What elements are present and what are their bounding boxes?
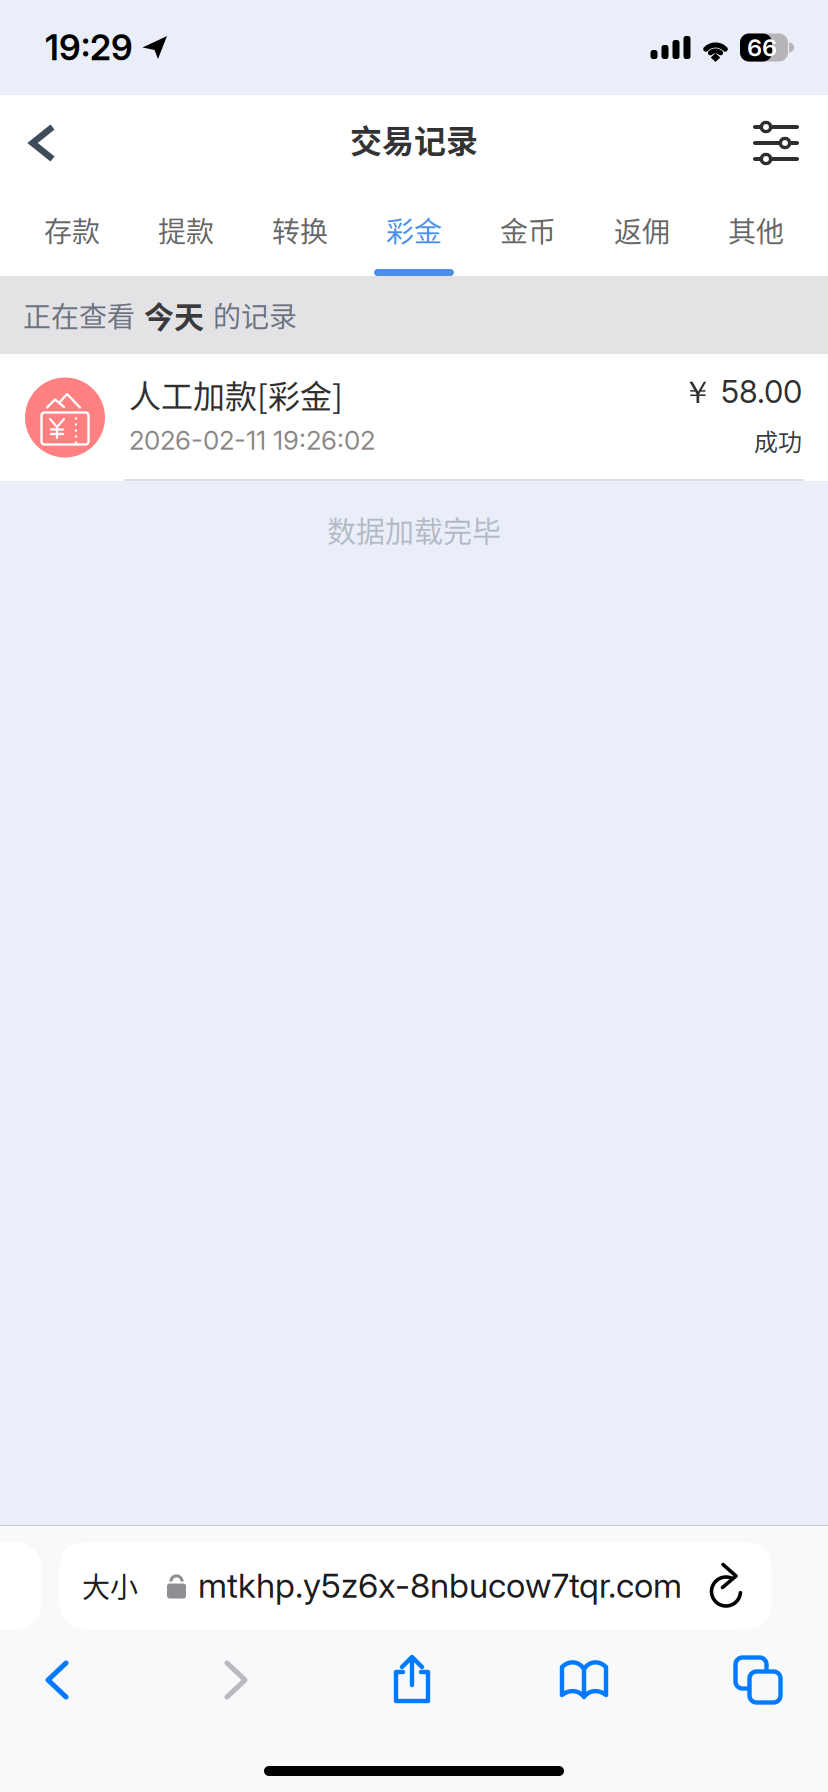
staticText: 66 xyxy=(747,33,777,62)
button[interactable]: 存款 xyxy=(15,191,129,276)
button[interactable]: 提款 xyxy=(129,191,243,276)
staticText: 提款 xyxy=(158,210,214,250)
button[interactable]: 转换 xyxy=(243,191,357,276)
staticText: 成功 xyxy=(754,423,802,458)
staticText: 人工加款[彩金] xyxy=(129,371,343,417)
staticText: 大小 xyxy=(82,1565,138,1606)
staticText: 的记录 xyxy=(213,295,297,335)
button[interactable]: Forward xyxy=(114,1645,358,1715)
button[interactable]: Tabs xyxy=(702,1645,814,1715)
staticText: 数据加载完毕 xyxy=(327,509,501,551)
button[interactable]: 彩金 xyxy=(357,191,471,276)
button[interactable]: Filter xyxy=(711,105,828,181)
staticText: 今天 xyxy=(144,293,204,337)
staticText: 交易记录 xyxy=(350,116,478,162)
staticText: 彩金 xyxy=(386,210,442,250)
staticText: 正在查看 xyxy=(23,295,135,335)
staticText: 金币 xyxy=(500,210,556,250)
staticText: mtkhp.y5z6x-8nbucow7tqr.com xyxy=(198,1565,682,1606)
button[interactable]: 人工加款[彩金] xyxy=(0,354,828,481)
button[interactable]: 其他 xyxy=(699,191,813,276)
staticText: 返佣 xyxy=(614,210,670,250)
staticText: 转换 xyxy=(272,210,328,250)
button[interactable]: 返佣 xyxy=(585,191,699,276)
staticText: 存款 xyxy=(44,210,100,250)
button[interactable]: Back xyxy=(0,105,96,181)
staticText: 其他 xyxy=(728,210,784,250)
button[interactable]: Page settings xyxy=(59,1542,154,1629)
button[interactable]: 金币 xyxy=(471,191,585,276)
button[interactable]: Back xyxy=(0,1645,114,1715)
button[interactable]: Reload xyxy=(700,1542,772,1629)
staticText: 19:29 xyxy=(45,26,133,69)
staticText: 2026-02-11 19:26:02 xyxy=(129,424,375,456)
button[interactable]: Bookmarks xyxy=(466,1645,702,1715)
staticText: ￥ 58.00 xyxy=(682,373,802,412)
button[interactable]: Share xyxy=(358,1645,466,1715)
